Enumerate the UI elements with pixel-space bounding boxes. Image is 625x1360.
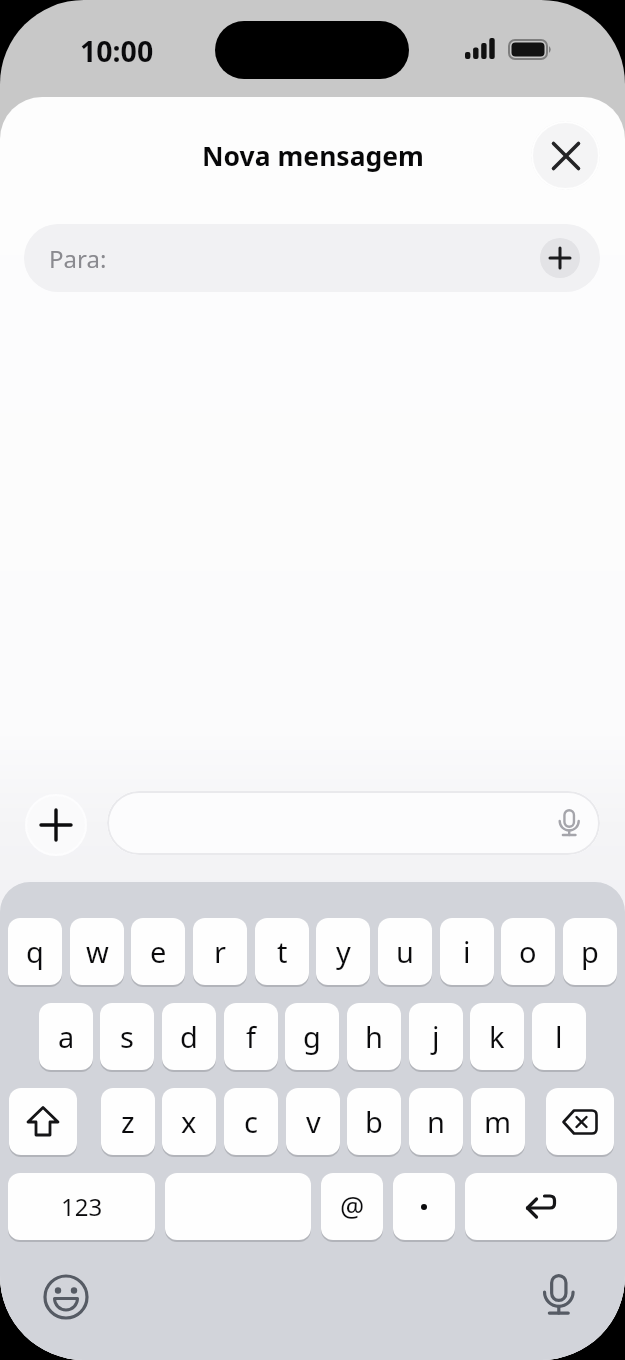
button[interactable]: u [378,918,432,985]
staticText: v [306,1102,321,1141]
staticText: 123 [61,1190,103,1223]
button[interactable] [165,1173,311,1240]
staticText: c [244,1102,258,1141]
staticText: l [555,1017,563,1056]
button[interactable]: t [255,918,309,985]
button[interactable] [465,1173,617,1240]
button[interactable]: n [409,1088,463,1155]
staticText: y [336,932,351,971]
staticText: b [365,1102,383,1141]
button[interactable] [393,1173,455,1240]
staticText: m [484,1102,512,1141]
button[interactable]: j [409,1003,463,1070]
staticText: i [463,932,471,971]
staticText: w [86,932,109,971]
button[interactable]: h [347,1003,401,1070]
button[interactable]: a [39,1003,93,1070]
staticText: u [396,932,414,971]
staticText: j [432,1017,440,1056]
staticText: q [26,932,44,971]
button[interactable]: q [8,918,62,985]
button[interactable]: k [470,1003,524,1070]
button[interactable] [533,1269,585,1321]
staticText: k [489,1017,505,1056]
button[interactable]: z [101,1088,155,1155]
button[interactable] [40,1271,92,1323]
button[interactable] [546,1088,614,1155]
staticText: d [180,1017,198,1056]
button[interactable] [531,121,600,190]
button[interactable]: @ [321,1173,383,1240]
button[interactable]: b [347,1088,401,1155]
staticText: @ [340,1188,365,1225]
staticText: r [214,932,226,971]
button[interactable]: o [501,918,555,985]
button[interactable] [540,238,580,278]
button[interactable]: i [440,918,494,985]
staticText: e [150,932,167,971]
button[interactable]: c [224,1088,278,1155]
staticText: h [365,1017,383,1056]
button[interactable]: p [563,918,617,985]
button[interactable]: y [316,918,370,985]
staticText: 10:00 [80,32,154,71]
staticText: o [519,932,537,971]
button[interactable]: s [100,1003,154,1070]
button[interactable] [107,791,600,855]
button[interactable]: Para: [24,224,600,292]
staticText: f [246,1017,256,1056]
button[interactable]: w [70,918,124,985]
staticText: Para: [49,242,107,275]
button[interactable]: f [224,1003,278,1070]
button[interactable]: l [532,1003,586,1070]
button[interactable]: 123 [8,1173,155,1240]
button[interactable] [9,1088,77,1155]
button[interactable]: d [162,1003,216,1070]
button[interactable]: e [131,918,185,985]
staticText: t [277,932,288,971]
staticText: s [120,1017,134,1056]
button[interactable]: v [286,1088,340,1155]
staticText: a [58,1017,75,1056]
button[interactable]: g [285,1003,339,1070]
button[interactable]: m [471,1088,525,1155]
staticText: p [581,932,599,971]
staticText: Nova mensagem [202,138,424,174]
staticText: g [303,1017,321,1056]
staticText: n [427,1102,445,1141]
staticText: x [181,1102,197,1141]
button[interactable]: x [162,1088,216,1155]
button[interactable] [25,794,87,856]
button[interactable]: r [193,918,247,985]
staticText: z [121,1102,135,1141]
